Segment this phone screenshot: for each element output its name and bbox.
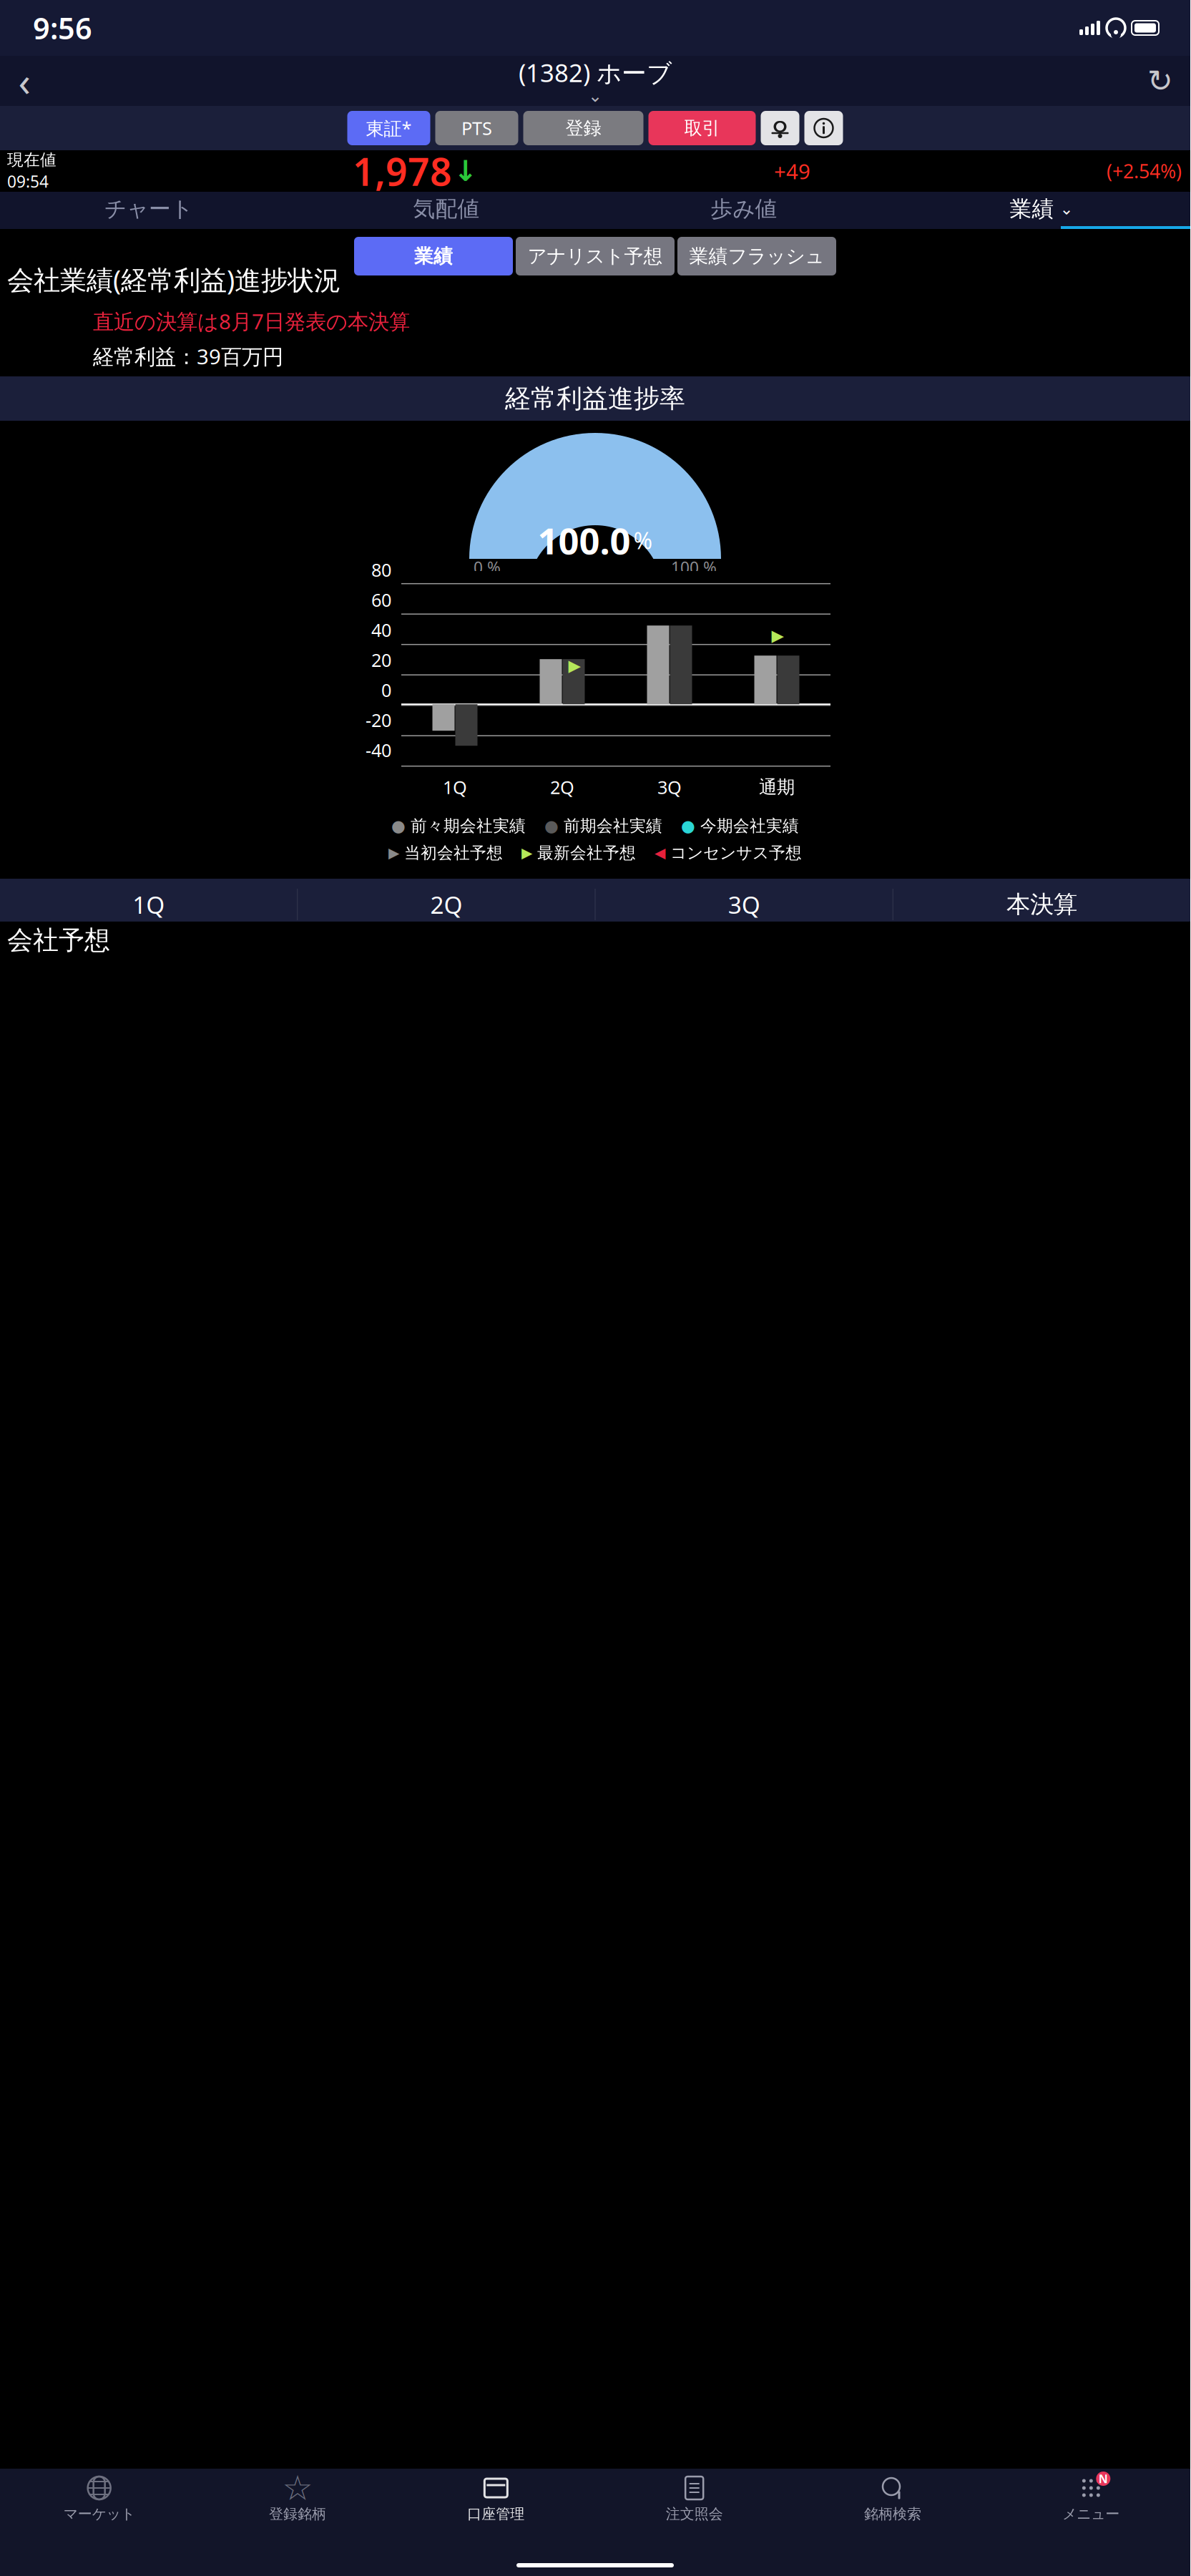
staticText: アナリスト予想	[528, 244, 663, 268]
button[interactable]: 業績フラッシュ	[677, 237, 836, 275]
staticText: N	[1099, 2471, 1108, 2486]
staticText: 60	[371, 588, 391, 612]
button[interactable]: Back	[6, 62, 43, 99]
staticText: 銘柄検索	[864, 2505, 921, 2523]
button[interactable]: 東証*	[347, 111, 430, 145]
staticText: 1Q	[132, 889, 165, 920]
staticText: ▶	[521, 845, 532, 861]
button[interactable]: Information	[804, 111, 843, 145]
staticText: 40	[371, 618, 391, 642]
staticText: 3Q	[657, 775, 682, 799]
staticText: 20	[371, 648, 391, 672]
staticText: 会社予想	[7, 924, 110, 956]
staticText: 対会社予想進捗率：100.0%	[93, 376, 351, 404]
staticText: 会社業績(経常利益)進捗状況	[7, 262, 340, 297]
staticText: 1,978	[353, 146, 452, 196]
staticText: 前々期会社実績	[411, 816, 526, 836]
button[interactable]: 歩み値	[595, 192, 893, 226]
staticText: 直近の決算は8月7日発表の本決算	[93, 307, 410, 335]
staticText: ●	[544, 817, 559, 835]
staticText: 取引	[684, 117, 720, 139]
button[interactable]: 気配値	[298, 192, 595, 226]
staticText: 東証*	[366, 116, 412, 140]
staticText: PTS	[461, 116, 492, 140]
staticText: 経常利益：39百万円	[93, 342, 283, 370]
staticText: -20	[366, 708, 391, 732]
staticText: コンセンサス予想	[670, 843, 802, 863]
button[interactable]: Alerts	[761, 111, 799, 145]
button[interactable]: 口座管理	[397, 2469, 595, 2527]
staticText: 前期会社実績	[564, 816, 662, 836]
staticText: 1Q	[443, 775, 467, 799]
staticText: 3Q	[728, 889, 760, 920]
button[interactable]: Refresh	[1142, 62, 1179, 99]
button[interactable]: マーケット	[0, 2469, 198, 2527]
staticText: マーケット	[63, 2505, 135, 2523]
staticText: 当初会社予想	[404, 843, 503, 863]
button[interactable]: チャート	[0, 192, 298, 226]
staticText: ●	[681, 817, 695, 835]
staticText: 2Q	[430, 889, 462, 920]
button[interactable]: 業績	[893, 192, 1190, 226]
staticText: ▶	[388, 845, 399, 861]
staticText: 現在値	[7, 150, 57, 170]
staticText: ⌄	[588, 86, 602, 106]
staticText: 登録銘柄	[269, 2505, 326, 2523]
staticText: -40	[366, 738, 391, 762]
button[interactable]: 本決算	[893, 879, 1190, 930]
staticText: 9:56	[33, 8, 92, 48]
staticText: 経常利益進捗率	[505, 383, 685, 414]
staticText: メニュー	[1062, 2505, 1120, 2523]
button[interactable]: アナリスト予想	[516, 237, 675, 275]
button[interactable]: 注文照会	[595, 2469, 793, 2527]
staticText: 100 %	[671, 557, 717, 578]
staticText: 口座管理	[467, 2505, 525, 2523]
staticText: ↓	[454, 155, 478, 187]
staticText: (1382) ホーブ	[519, 56, 672, 89]
staticText: ↻	[1147, 64, 1173, 98]
staticText: 気配値	[413, 195, 480, 222]
button[interactable]: 取引	[648, 111, 756, 145]
staticText: 100.0	[538, 516, 631, 564]
button[interactable]: 2Q	[298, 879, 595, 930]
staticText: 歩み値	[711, 195, 777, 222]
button[interactable]: 銘柄検索	[793, 2469, 992, 2527]
staticText: 業績フラッシュ	[689, 244, 824, 268]
staticText: %	[633, 525, 653, 555]
staticText: ●	[391, 817, 406, 835]
button[interactable]: 3Q	[595, 879, 893, 930]
staticText: +49	[774, 157, 810, 185]
staticText: ⌄	[1060, 200, 1073, 218]
staticText: 登録	[565, 117, 601, 139]
staticText: 最新会社予想	[537, 843, 636, 863]
staticText: 2Q	[550, 775, 574, 799]
staticText: 80	[371, 558, 391, 582]
staticText: チャート	[104, 195, 193, 222]
button[interactable]: N	[992, 2469, 1190, 2527]
staticText: 0 %	[474, 557, 501, 578]
staticText: ‹	[18, 54, 30, 107]
button[interactable]: PTS	[435, 111, 518, 145]
staticText: 今期会社実績	[700, 816, 799, 836]
button[interactable]: 1Q	[0, 879, 297, 930]
staticText: 業績	[414, 244, 453, 268]
button[interactable]: ☆	[198, 2469, 397, 2527]
staticText: 本決算	[1006, 890, 1077, 919]
staticText: ◀	[655, 845, 665, 861]
staticText: 0	[381, 678, 391, 702]
button[interactable]: 業績	[354, 237, 513, 275]
button[interactable]: 登録	[523, 111, 643, 145]
staticText: 通期	[759, 776, 795, 798]
staticText: (+2.54%)	[1107, 158, 1182, 184]
staticText: ☆	[282, 2469, 313, 2508]
staticText: 業績	[1010, 195, 1054, 222]
staticText: 注文照会	[666, 2505, 723, 2523]
staticText: ▶	[771, 626, 784, 645]
staticText: ▶	[568, 656, 580, 675]
staticText: 09:54	[7, 171, 49, 192]
